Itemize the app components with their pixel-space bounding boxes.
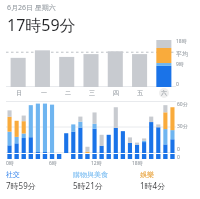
staticText: 1時4分 bbox=[140, 180, 166, 191]
staticText: 五 bbox=[137, 89, 143, 97]
button[interactable]: 日 bbox=[6, 40, 198, 98]
staticText: 6月26日 星期六 bbox=[7, 3, 56, 13]
staticText: 0 bbox=[176, 81, 179, 88]
staticText: 18時 bbox=[176, 38, 187, 45]
staticText: 30分 bbox=[177, 123, 188, 130]
staticText: 平均 bbox=[176, 50, 188, 58]
button[interactable]: 社交 bbox=[6, 170, 73, 191]
staticText: 17時59分 bbox=[7, 14, 76, 36]
staticText: 18時 bbox=[132, 160, 143, 167]
staticText: 購物與美食 bbox=[73, 170, 108, 179]
staticText: 5時21分 bbox=[73, 180, 103, 191]
staticText: 三 bbox=[89, 89, 95, 97]
staticText: 六 bbox=[161, 89, 167, 97]
button[interactable]: 娛樂 bbox=[140, 170, 194, 191]
staticText: 社交 bbox=[6, 170, 20, 179]
staticText: 6時 bbox=[49, 160, 57, 167]
staticText: 二 bbox=[65, 89, 71, 97]
button[interactable]: 60分 bbox=[6, 101, 198, 153]
button[interactable]: 0時 bbox=[6, 154, 198, 168]
staticText: 12時 bbox=[91, 160, 102, 167]
staticText: 7時59分 bbox=[6, 180, 36, 191]
staticText: 60分 bbox=[177, 101, 188, 108]
staticText: 一 bbox=[41, 89, 47, 97]
staticText: 0時 bbox=[6, 160, 14, 167]
staticText: 0 bbox=[177, 154, 180, 161]
staticText: 0 bbox=[177, 146, 180, 153]
staticText: 日 bbox=[16, 89, 22, 97]
staticText: 娛樂 bbox=[140, 170, 154, 179]
staticText: 9時 bbox=[176, 61, 184, 68]
button[interactable]: 購物與美食 bbox=[73, 170, 140, 191]
staticText: 四 bbox=[113, 89, 119, 97]
